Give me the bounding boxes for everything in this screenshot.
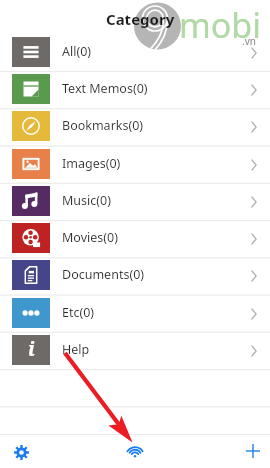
button[interactable]: i bbox=[0, 332, 270, 369]
button[interactable]: Music(0) bbox=[0, 183, 270, 220]
button[interactable]: All(0) bbox=[0, 34, 270, 71]
button[interactable]: Wifi bbox=[105, 434, 165, 468]
staticText: i bbox=[28, 336, 35, 362]
staticText: Help bbox=[62, 341, 90, 358]
staticText: mobi bbox=[179, 2, 262, 48]
staticText: Text Memos(0) bbox=[62, 80, 148, 97]
button[interactable]: Etc(0) bbox=[0, 295, 270, 332]
staticText: Images(0) bbox=[62, 155, 121, 172]
button[interactable]: Settings bbox=[0, 434, 60, 468]
button[interactable]: Documents(0) bbox=[0, 257, 270, 294]
button[interactable]: Bookmarks(0) bbox=[0, 108, 270, 145]
staticText: Etc(0) bbox=[62, 304, 95, 321]
staticText: All(0) bbox=[62, 43, 92, 60]
staticText: Category bbox=[106, 9, 175, 29]
button[interactable]: Text Memos(0) bbox=[0, 71, 270, 108]
button[interactable]: Movies(0) bbox=[0, 220, 270, 257]
staticText: .vn bbox=[242, 34, 256, 48]
staticText: Documents(0) bbox=[62, 266, 145, 283]
staticText: Music(0) bbox=[62, 192, 111, 209]
staticText: Movies(0) bbox=[62, 229, 118, 246]
button[interactable]: Images(0) bbox=[0, 146, 270, 183]
button[interactable]: Add bbox=[210, 434, 270, 468]
staticText: Bookmarks(0) bbox=[62, 117, 144, 134]
